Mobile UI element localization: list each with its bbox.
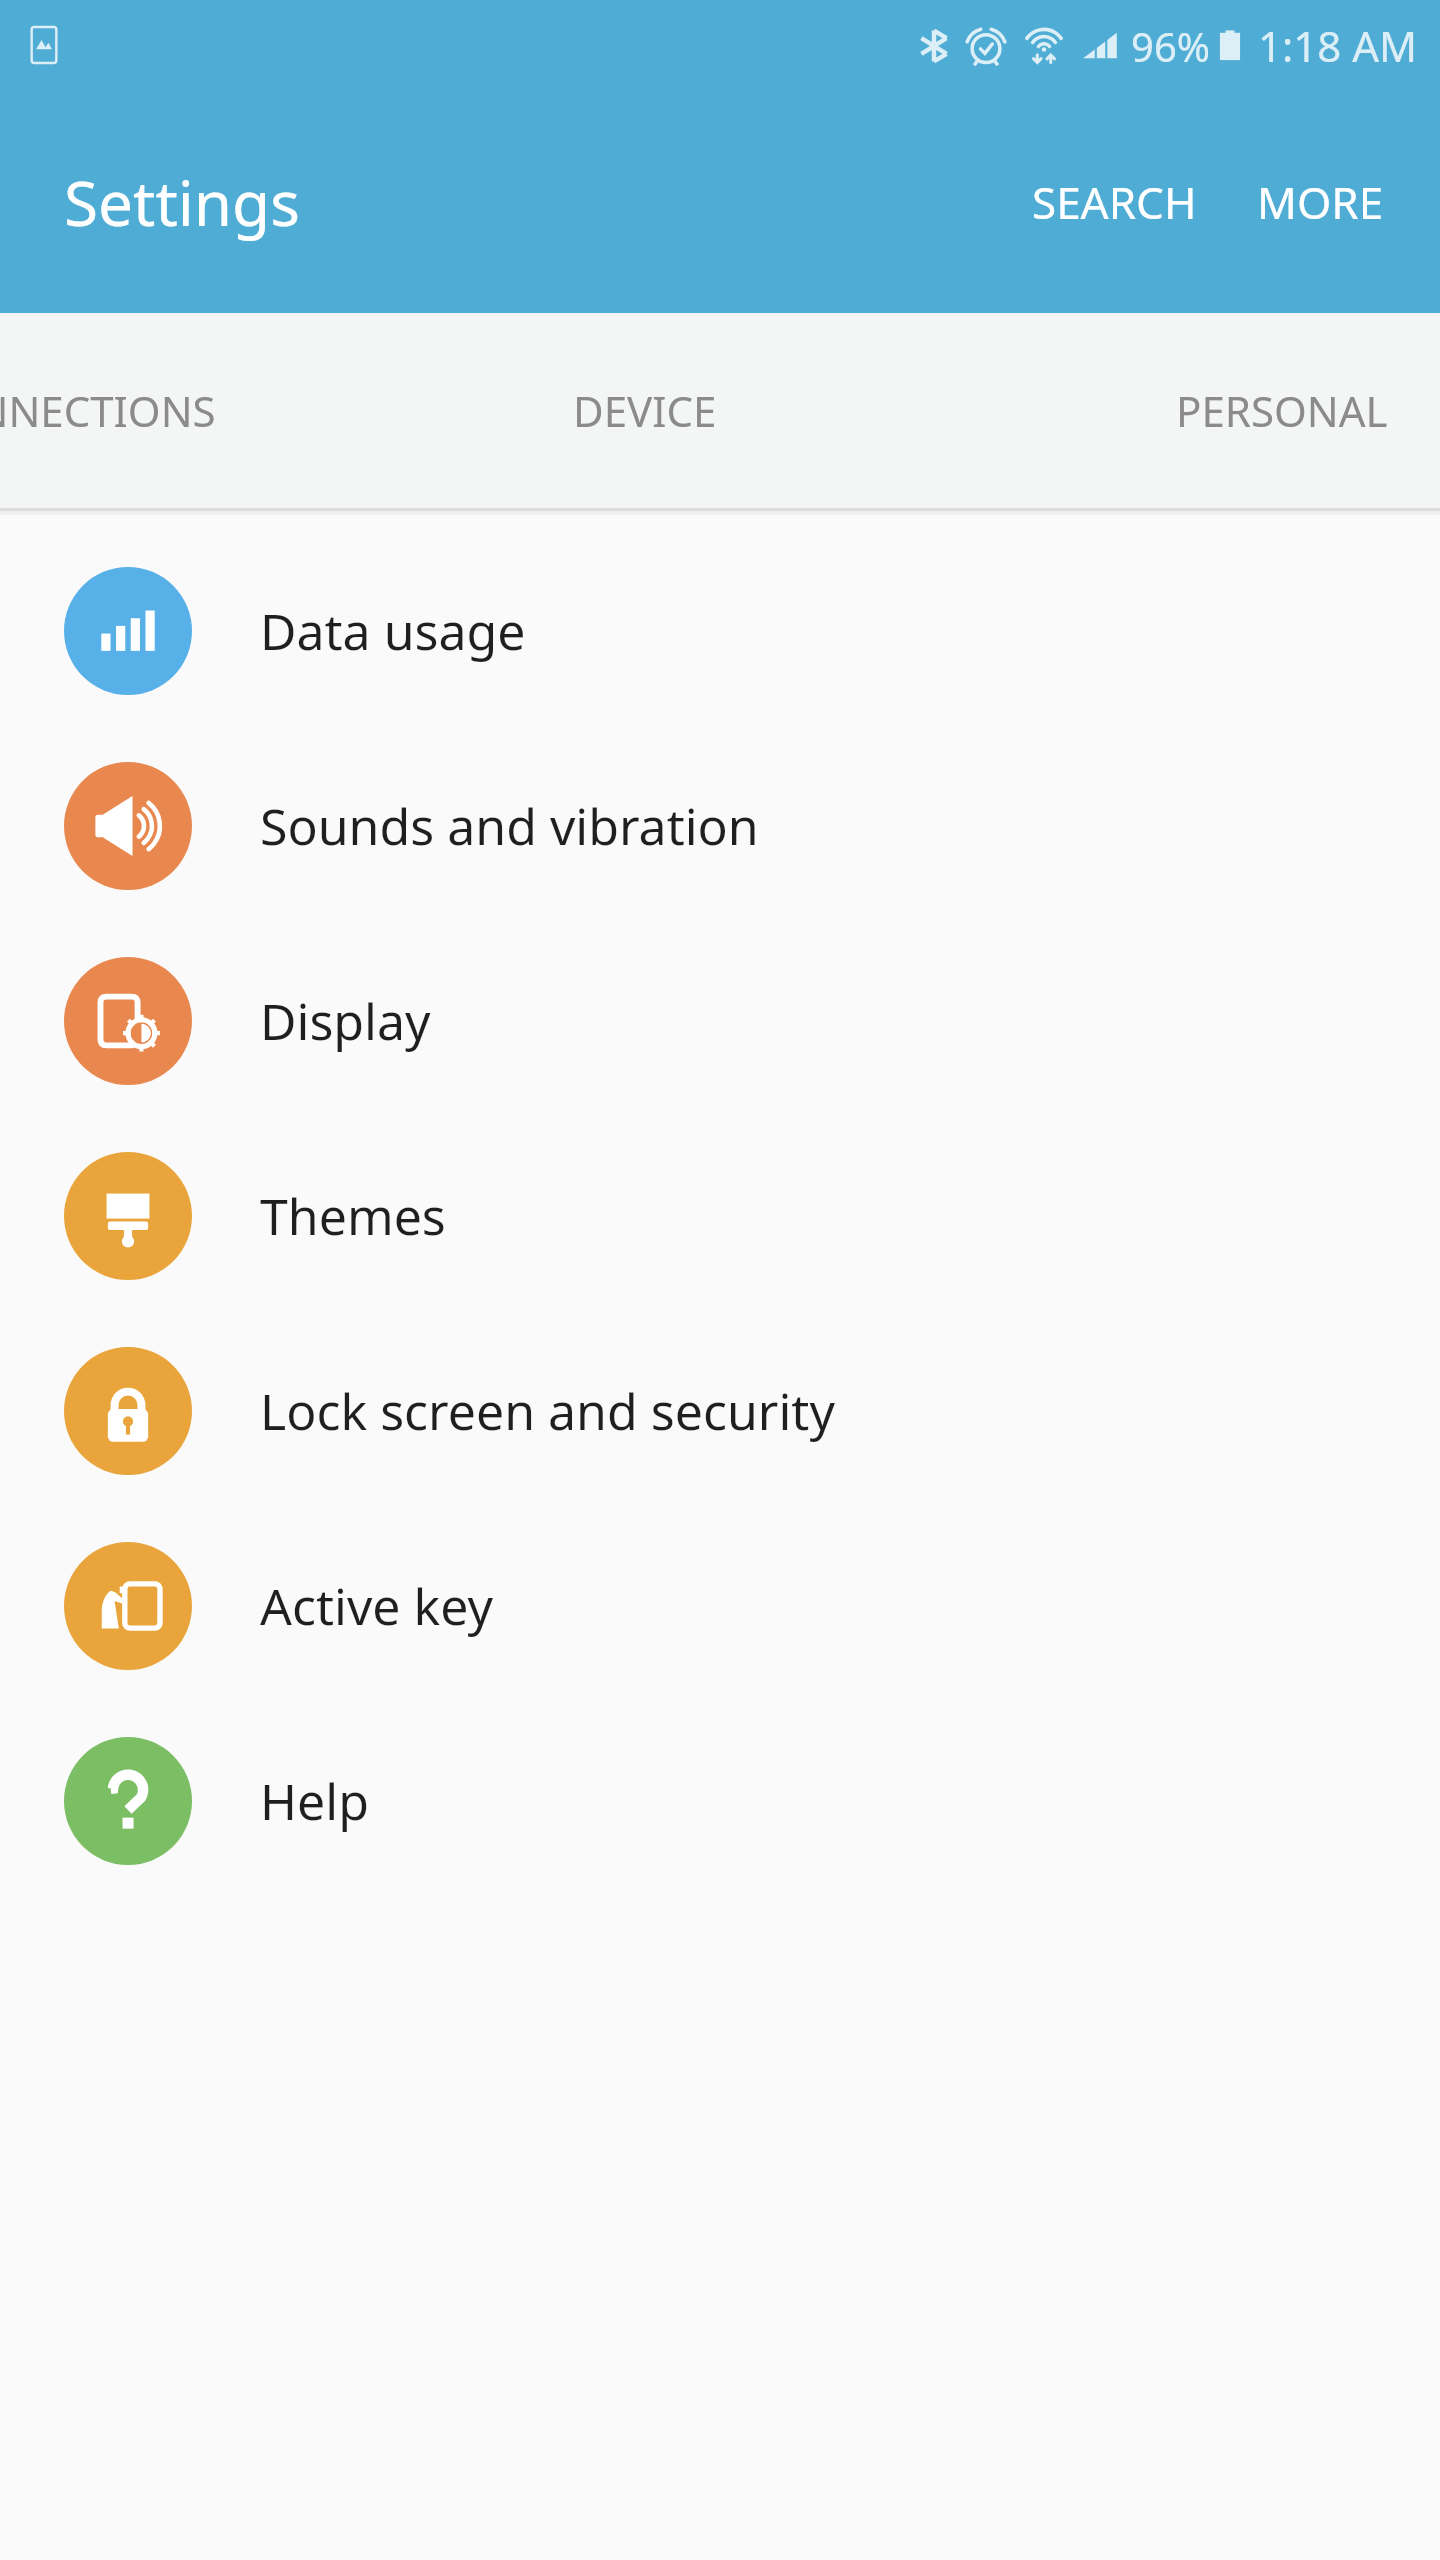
staticText: Lock screen and security bbox=[260, 1377, 835, 1445]
button[interactable]: Sounds and vibration bbox=[0, 728, 1440, 923]
button[interactable]: CONNECTIONS bbox=[0, 346, 246, 475]
staticText: Active key bbox=[260, 1572, 493, 1640]
staticText: Sounds and vibration bbox=[260, 792, 759, 860]
button[interactable]: Help bbox=[0, 1703, 1440, 1898]
button[interactable]: DEVICE bbox=[543, 346, 747, 475]
staticText: Settings bbox=[64, 160, 300, 244]
button[interactable]: SEARCH bbox=[1022, 154, 1207, 250]
button[interactable]: Display bbox=[0, 923, 1440, 1118]
button[interactable]: MORE bbox=[1247, 154, 1394, 250]
button[interactable]: Active key bbox=[0, 1508, 1440, 1703]
staticText: Help bbox=[260, 1767, 369, 1835]
button[interactable]: Data usage bbox=[0, 533, 1440, 728]
staticText: DEVICE bbox=[573, 382, 717, 439]
button[interactable]: PERSONAL bbox=[1146, 346, 1418, 475]
staticText: 96% bbox=[1131, 19, 1210, 73]
button[interactable]: Themes bbox=[0, 1118, 1440, 1313]
button[interactable]: Lock screen and security bbox=[0, 1313, 1440, 1508]
staticText: Themes bbox=[260, 1182, 446, 1250]
staticText: SEARCH bbox=[1032, 172, 1197, 232]
staticText: CONNECTIONS bbox=[0, 382, 216, 439]
staticText: 1:18 AM bbox=[1258, 17, 1418, 74]
staticText: Data usage bbox=[260, 597, 526, 665]
staticText: Display bbox=[260, 987, 431, 1055]
staticText: MORE bbox=[1257, 172, 1384, 232]
staticText: PERSONAL bbox=[1176, 382, 1388, 439]
